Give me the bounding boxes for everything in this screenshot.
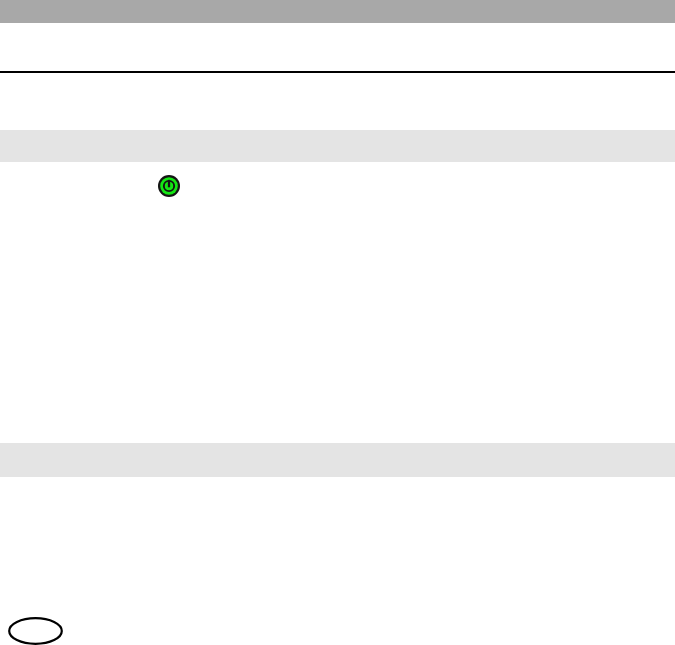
button[interactable]: Button — [8, 617, 63, 645]
button[interactable]: Status: on — [158, 175, 180, 197]
